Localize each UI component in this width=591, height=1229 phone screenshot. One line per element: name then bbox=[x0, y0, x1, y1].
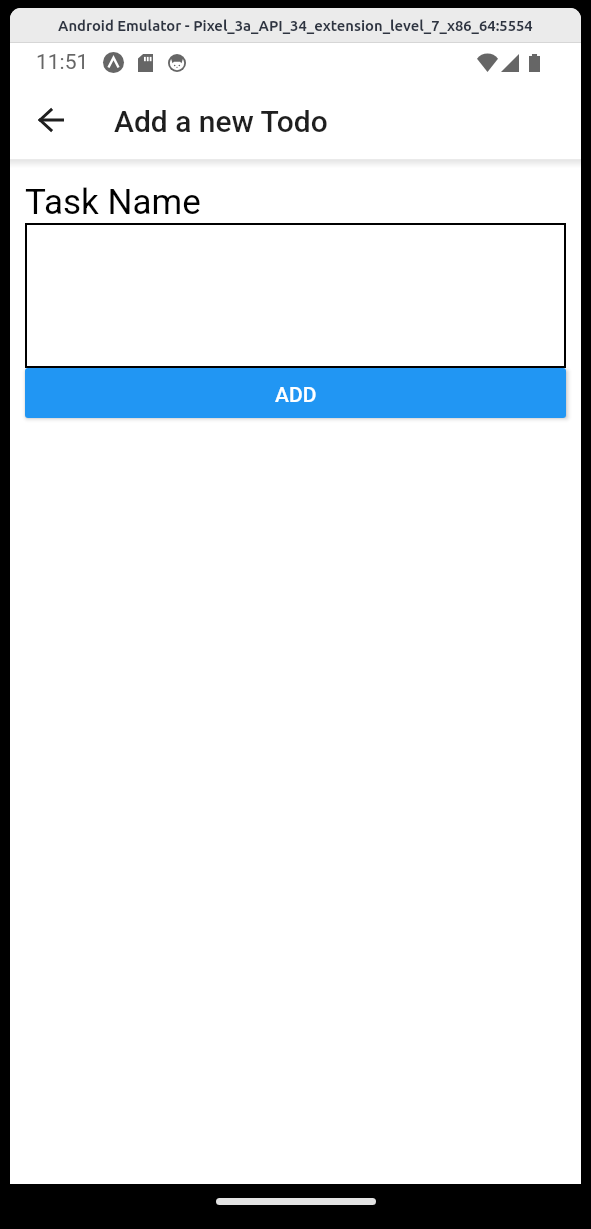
staticText: Android Emulator - Pixel_3a_API_34_exten… bbox=[58, 17, 533, 34]
staticText: Task Name bbox=[25, 182, 201, 223]
button[interactable] bbox=[25, 223, 566, 368]
staticText: Add a new Todo bbox=[114, 104, 328, 139]
staticText: 11:51 bbox=[36, 50, 89, 75]
button[interactable]: ADD bbox=[25, 368, 566, 418]
button[interactable]: Back bbox=[30, 98, 74, 142]
staticText: ADD bbox=[275, 383, 317, 408]
